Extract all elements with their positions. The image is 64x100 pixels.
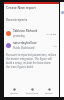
button[interactable]: saturdayhollow bbox=[4, 39, 59, 51]
staticText: Reports bbox=[10, 92, 19, 95]
button[interactable]: Tableau Richard bbox=[4, 27, 59, 39]
staticText: Tableau Richard bbox=[13, 29, 38, 33]
button[interactable]: Explore bbox=[44, 87, 54, 96]
button[interactable]: Reports bbox=[9, 87, 20, 96]
staticText: Recent reports bbox=[6, 18, 28, 22]
staticText: build a setup, include the base stone. bbox=[6, 61, 52, 65]
staticText: Create New report bbox=[6, 5, 36, 10]
staticText: Explore bbox=[45, 92, 53, 95]
staticText: the border integration. The figure will bbox=[6, 57, 52, 61]
staticText: Public Dashboard bbox=[13, 46, 35, 50]
staticText: the trace figures build. bbox=[6, 65, 34, 69]
staticText: Dashboards bbox=[26, 92, 39, 95]
staticText: 3 d bbox=[53, 44, 57, 47]
button[interactable]: Dashboards bbox=[25, 87, 40, 96]
staticText: saturdayhollow bbox=[13, 41, 37, 45]
staticText: yesterday bbox=[13, 34, 25, 38]
staticText: Pursuant to reported parameters, reduce bbox=[6, 53, 57, 57]
staticText: 10:15 am bbox=[46, 32, 57, 35]
